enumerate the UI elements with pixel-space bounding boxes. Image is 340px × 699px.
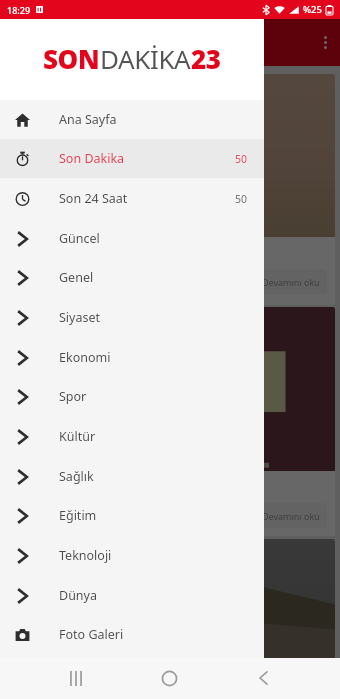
staticText: Teknoloji — [59, 547, 112, 564]
button[interactable]: Spor — [0, 377, 264, 416]
staticText: Son 24 Saat — [59, 190, 128, 207]
button[interactable]: Genel — [0, 258, 264, 297]
staticText: Spor — [59, 388, 87, 405]
staticText: %25 — [303, 3, 322, 16]
button[interactable]: Back — [243, 658, 283, 698]
button[interactable]: Devamını oku — [13, 503, 327, 528]
button[interactable]: Dünya — [0, 576, 264, 615]
button[interactable]: Recent apps — [56, 658, 96, 698]
button[interactable]: Ekonomi — [0, 338, 264, 377]
staticText: ne yoğun ilgi — [13, 243, 103, 262]
staticText: Siyaset — [59, 309, 101, 326]
staticText: Devamını oku — [262, 510, 320, 522]
button[interactable]: Kültür — [0, 417, 264, 456]
button[interactable]: Sağlık — [0, 457, 264, 496]
button[interactable]: Ana Sayfa — [0, 100, 264, 139]
button[interactable]: Güncel — [0, 219, 264, 258]
staticText: Güncel — [59, 230, 100, 247]
button[interactable]: Eğitim — [0, 496, 264, 535]
staticText: 23 — [191, 41, 221, 76]
staticText: Devamını oku — [262, 276, 320, 288]
staticText: DAKİKA — [100, 41, 191, 76]
button[interactable]: Son Dakika — [0, 139, 264, 178]
button[interactable]: Teknoloji — [0, 536, 264, 575]
staticText: Dünya — [59, 587, 97, 604]
staticText: Son Dakika — [59, 150, 125, 167]
staticText: Ekonomi — [59, 349, 111, 366]
staticText: Sağlık — [59, 468, 94, 485]
staticText: Kültür — [59, 428, 96, 445]
staticText: 18:29 — [7, 4, 31, 16]
staticText: Ana Sayfa — [59, 111, 117, 128]
staticText: SON — [43, 41, 100, 76]
staticText: Eğitim — [59, 507, 97, 524]
staticText: de — [13, 477, 31, 496]
button[interactable]: Foto Galeri — [0, 615, 264, 654]
staticText: 50 — [235, 152, 248, 166]
staticText: Genel — [59, 269, 94, 286]
staticText: 50 — [235, 192, 248, 206]
button[interactable]: Siyaset — [0, 298, 264, 337]
button[interactable]: Son 24 Saat — [0, 179, 264, 218]
staticText: Foto Galeri — [59, 626, 124, 643]
button[interactable]: Home — [149, 658, 189, 698]
button[interactable]: Devamını oku — [13, 269, 327, 294]
